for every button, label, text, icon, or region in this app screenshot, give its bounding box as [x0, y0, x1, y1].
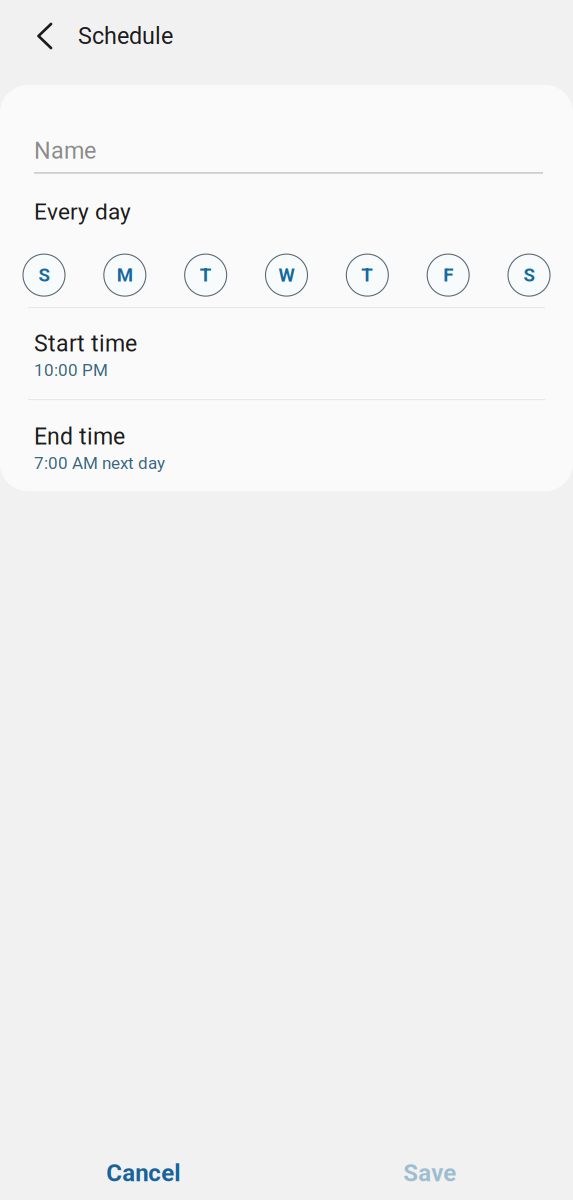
staticText: W — [278, 264, 294, 286]
staticText: End time — [34, 423, 125, 450]
button[interactable]: Sunday — [23, 254, 65, 296]
button[interactable]: End time — [0, 400, 573, 491]
staticText: S — [523, 264, 534, 286]
button[interactable]: Thursday — [346, 254, 388, 296]
button[interactable]: Saturday — [508, 254, 550, 296]
staticText: M — [117, 264, 133, 286]
button[interactable]: Back — [23, 14, 67, 58]
button[interactable]: Tuesday — [185, 254, 227, 296]
staticText: T — [200, 264, 212, 286]
button[interactable]: Monday — [104, 254, 146, 296]
button[interactable]: Save — [286, 1135, 573, 1200]
staticText: Every day — [34, 198, 131, 225]
button[interactable]: Wednesday — [265, 254, 307, 296]
button[interactable]: Start time — [0, 308, 573, 399]
staticText: Schedule — [78, 22, 173, 50]
staticText: 10:00 PM — [34, 360, 108, 380]
staticText: Save — [403, 1159, 456, 1187]
staticText: Name — [34, 137, 96, 164]
button[interactable]: Cancel — [0, 1135, 286, 1200]
button[interactable]: Schedule — [67, 14, 185, 58]
staticText: Start time — [34, 330, 137, 357]
button[interactable]: Name — [0, 85, 573, 173]
button[interactable]: Friday — [427, 254, 469, 296]
staticText: Cancel — [106, 1159, 180, 1187]
staticText: T — [361, 264, 373, 286]
staticText: 7:00 AM next day — [34, 453, 165, 473]
staticText: S — [38, 264, 49, 286]
staticText: F — [443, 264, 453, 286]
